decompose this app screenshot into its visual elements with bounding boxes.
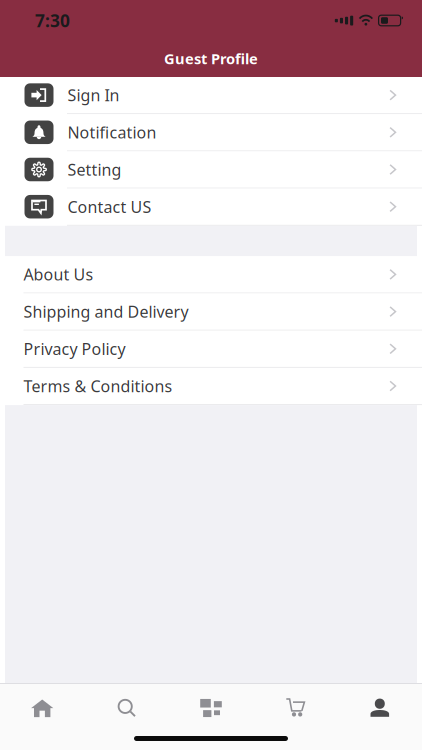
- button[interactable]: Setting: [0, 151, 422, 189]
- button[interactable]: Shipping and Delivery: [0, 293, 422, 331]
- button[interactable]: Home: [0, 684, 84, 732]
- button[interactable]: Contact US: [0, 189, 422, 226]
- button[interactable]: Cart: [253, 684, 338, 732]
- staticText: Contact US: [67, 196, 151, 217]
- staticText: Sign In: [67, 84, 119, 106]
- button[interactable]: Profile: [338, 684, 422, 732]
- button[interactable]: Categories: [169, 684, 253, 732]
- staticText: Notification: [67, 122, 156, 143]
- staticText: 7:30: [35, 9, 70, 32]
- button[interactable]: Sign In: [0, 77, 422, 114]
- staticText: Privacy Policy: [23, 338, 125, 359]
- staticText: Guest Profile: [164, 49, 258, 68]
- staticText: Terms & Conditions: [23, 375, 172, 397]
- staticText: About Us: [23, 264, 93, 285]
- button[interactable]: Search: [84, 684, 169, 732]
- staticText: Setting: [67, 159, 121, 180]
- button[interactable]: Terms & Conditions: [0, 368, 422, 405]
- staticText: Shipping and Delivery: [23, 301, 188, 322]
- button[interactable]: Privacy Policy: [0, 331, 422, 368]
- button[interactable]: Notification: [0, 114, 422, 151]
- button[interactable]: About Us: [0, 256, 422, 293]
